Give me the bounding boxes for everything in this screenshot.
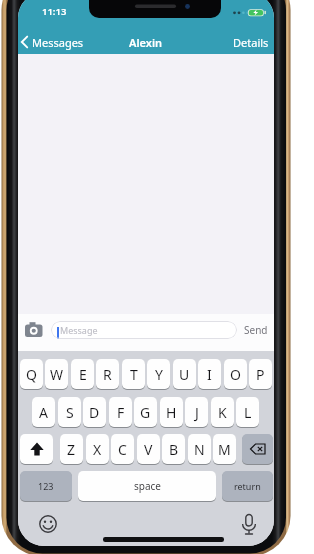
button[interactable]: X bbox=[86, 434, 109, 464]
button[interactable]: W bbox=[45, 359, 68, 389]
staticText: C bbox=[118, 440, 127, 459]
staticText: Details bbox=[233, 35, 269, 50]
button[interactable]: E bbox=[71, 359, 94, 389]
button[interactable]: B bbox=[162, 434, 185, 464]
button[interactable]: C bbox=[111, 434, 134, 464]
staticText: J bbox=[195, 403, 199, 422]
button[interactable]: J bbox=[185, 397, 208, 427]
button[interactable]: Y bbox=[147, 359, 170, 389]
button[interactable]: Details bbox=[228, 34, 274, 50]
staticText: Y bbox=[155, 365, 163, 384]
staticText: space bbox=[134, 479, 161, 493]
button[interactable] bbox=[20, 434, 53, 464]
staticText: X bbox=[93, 440, 102, 459]
staticText: return bbox=[234, 480, 261, 492]
staticText: 11:13 bbox=[42, 5, 67, 18]
staticText: E bbox=[79, 365, 87, 384]
button[interactable]: V bbox=[137, 434, 160, 464]
button[interactable]: A bbox=[32, 397, 55, 427]
staticText: L bbox=[244, 403, 252, 422]
button[interactable]: T bbox=[122, 359, 145, 389]
button[interactable]: Message bbox=[51, 321, 237, 339]
button[interactable]: return bbox=[222, 471, 273, 501]
button[interactable]: F bbox=[109, 397, 132, 427]
staticText: G bbox=[140, 403, 151, 422]
staticText: R bbox=[103, 365, 112, 384]
button[interactable]: U bbox=[173, 359, 196, 389]
button[interactable]: Send bbox=[242, 322, 270, 338]
staticText: D bbox=[89, 403, 100, 422]
staticText: F bbox=[117, 403, 125, 422]
staticText: O bbox=[230, 365, 241, 384]
button[interactable] bbox=[23, 320, 45, 340]
button[interactable]: N bbox=[188, 434, 211, 464]
button[interactable]: D bbox=[83, 397, 106, 427]
button[interactable]: Messages bbox=[32, 34, 102, 50]
button[interactable] bbox=[239, 513, 259, 537]
button[interactable]: G bbox=[134, 397, 157, 427]
staticText: W bbox=[50, 365, 64, 384]
staticText: Message bbox=[60, 324, 98, 336]
staticText: S bbox=[66, 403, 74, 422]
button[interactable] bbox=[242, 434, 273, 464]
button[interactable]: O bbox=[224, 359, 247, 389]
staticText: U bbox=[179, 365, 190, 384]
staticText: A bbox=[39, 403, 48, 422]
button[interactable]: H bbox=[160, 397, 183, 427]
staticText: Z bbox=[67, 440, 76, 459]
staticText: I bbox=[207, 365, 212, 384]
button[interactable]: S bbox=[58, 397, 81, 427]
staticText: K bbox=[218, 403, 227, 422]
button[interactable]: 123 bbox=[20, 471, 72, 501]
staticText: M bbox=[218, 440, 231, 459]
button[interactable]: R bbox=[96, 359, 119, 389]
staticText: H bbox=[166, 403, 177, 422]
button[interactable] bbox=[38, 514, 58, 534]
button[interactable]: I bbox=[198, 359, 221, 389]
staticText: 123 bbox=[38, 480, 54, 492]
button[interactable]: M bbox=[213, 434, 236, 464]
staticText: P bbox=[256, 365, 265, 384]
button[interactable]: P bbox=[249, 359, 272, 389]
staticText: V bbox=[144, 440, 153, 459]
staticText: Q bbox=[26, 365, 37, 384]
button[interactable]: space bbox=[78, 471, 216, 501]
button[interactable]: Z bbox=[60, 434, 83, 464]
staticText: T bbox=[130, 365, 138, 384]
staticText: B bbox=[169, 440, 179, 459]
staticText: N bbox=[194, 440, 205, 459]
button[interactable]: Q bbox=[20, 359, 43, 389]
staticText: Send bbox=[244, 323, 268, 337]
staticText: Alexin bbox=[129, 35, 163, 50]
staticText: Messages bbox=[32, 35, 84, 50]
button[interactable]: L bbox=[236, 397, 259, 427]
button[interactable]: K bbox=[211, 397, 234, 427]
